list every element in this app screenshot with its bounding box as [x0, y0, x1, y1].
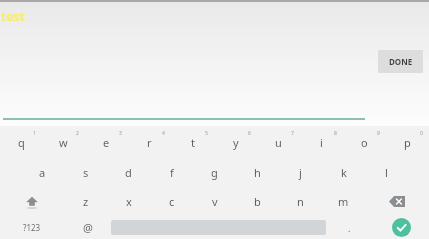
- button[interactable]: e: [85, 126, 128, 158]
- button[interactable]: t: [171, 126, 214, 158]
- staticText: i: [320, 135, 323, 150]
- staticText: a: [39, 165, 46, 180]
- staticText: b: [254, 194, 261, 209]
- button[interactable]: r: [128, 126, 171, 158]
- button[interactable]: i: [300, 126, 343, 158]
- staticText: c: [169, 194, 175, 209]
- staticText: 6: [248, 130, 251, 137]
- staticText: u: [275, 135, 282, 150]
- staticText: x: [126, 194, 132, 209]
- staticText: y: [233, 135, 239, 150]
- staticText: o: [361, 135, 368, 150]
- staticText: 4: [162, 130, 165, 137]
- staticText: p: [404, 135, 411, 150]
- button[interactable]: k: [322, 158, 365, 187]
- button[interactable]: v: [193, 187, 236, 216]
- button[interactable]: q: [0, 126, 42, 158]
- button[interactable]: a: [21, 158, 64, 187]
- button[interactable]: o: [343, 126, 386, 158]
- button[interactable]: Shift: [0, 187, 64, 216]
- staticText: v: [212, 194, 218, 209]
- button[interactable]: w: [42, 126, 85, 158]
- staticText: g: [211, 165, 218, 180]
- staticText: h: [254, 165, 261, 180]
- button[interactable]: z: [64, 187, 107, 216]
- staticText: q: [18, 135, 25, 150]
- staticText: 5: [205, 130, 208, 137]
- staticText: n: [297, 194, 304, 209]
- button[interactable]: d: [107, 158, 150, 187]
- button[interactable]: x: [107, 187, 150, 216]
- staticText: t: [191, 135, 195, 150]
- button[interactable]: u: [257, 126, 300, 158]
- staticText: m: [338, 194, 349, 209]
- staticText: @: [83, 220, 93, 235]
- staticText: z: [83, 194, 89, 209]
- button[interactable]: m: [322, 187, 365, 216]
- staticText: d: [125, 165, 132, 180]
- button[interactable]: s: [64, 158, 107, 187]
- staticText: DONE: [389, 56, 413, 67]
- staticText: 1: [33, 130, 36, 137]
- button[interactable]: @: [64, 216, 111, 239]
- button[interactable]: n: [279, 187, 322, 216]
- staticText: s: [83, 165, 89, 180]
- staticText: k: [341, 165, 347, 180]
- staticText: 3: [119, 130, 122, 137]
- button[interactable]: y: [214, 126, 257, 158]
- staticText: test: [1, 8, 25, 24]
- button[interactable]: h: [236, 158, 279, 187]
- button[interactable]: DONE: [378, 50, 423, 73]
- staticText: 8: [334, 130, 337, 137]
- staticText: e: [103, 135, 110, 150]
- button[interactable]: b: [236, 187, 279, 216]
- staticText: w: [59, 135, 68, 150]
- button[interactable]: g: [193, 158, 236, 187]
- button[interactable]: Enter: [373, 216, 429, 239]
- staticText: j: [299, 165, 302, 180]
- staticText: 0: [420, 130, 423, 137]
- staticText: .: [348, 222, 351, 234]
- staticText: 9: [377, 130, 380, 137]
- staticText: 2: [76, 130, 79, 137]
- button[interactable]: j: [279, 158, 322, 187]
- staticText: ?123: [23, 222, 41, 233]
- staticText: l: [385, 165, 388, 180]
- staticText: f: [170, 165, 174, 180]
- button[interactable]: p: [386, 126, 429, 158]
- button[interactable]: Backspace: [365, 187, 429, 216]
- button[interactable]: f: [150, 158, 193, 187]
- button[interactable]: ?123: [0, 216, 64, 239]
- staticText: r: [147, 135, 152, 150]
- button[interactable]: c: [150, 187, 193, 216]
- button[interactable]: l: [365, 158, 408, 187]
- staticText: 7: [291, 130, 294, 137]
